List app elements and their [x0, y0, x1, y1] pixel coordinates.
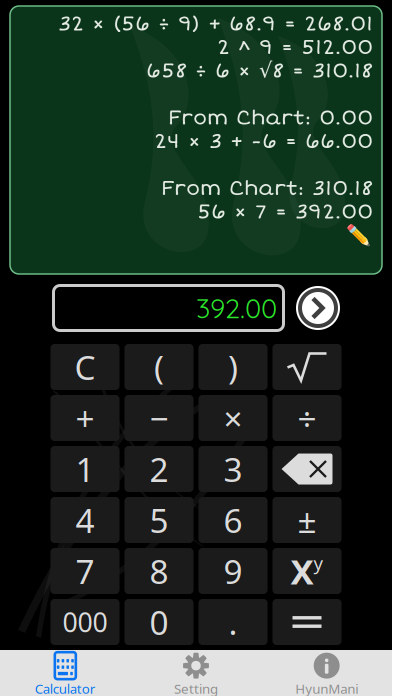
staticText: )	[228, 345, 238, 389]
staticText: +	[75, 396, 94, 440]
button[interactable]: ÷	[272, 395, 341, 441]
button[interactable]: .	[198, 599, 267, 645]
staticText: From Chart: 310.18	[161, 175, 373, 201]
staticText: 32 × (56 ÷ 9) + 68.9 = 268.01	[58, 11, 373, 37]
staticText: Setting	[174, 680, 218, 696]
staticText: ×	[223, 396, 242, 440]
button[interactable]: 7	[50, 548, 119, 594]
button[interactable]: −	[124, 395, 193, 441]
button[interactable]: Calculator	[0, 650, 131, 696]
staticText: 4	[75, 498, 94, 542]
staticText: −	[149, 396, 168, 440]
staticText: 5	[149, 498, 168, 542]
staticText: 2 ^ 9 = 512.00	[217, 34, 373, 60]
staticText: Calculator	[35, 680, 96, 696]
staticText: From Chart: 0.00	[168, 105, 373, 131]
button[interactable]: 0	[124, 599, 193, 645]
button[interactable]: 8	[124, 548, 193, 594]
button[interactable]: +	[50, 395, 119, 441]
staticText: C	[74, 345, 95, 389]
staticText: 658 ÷ 6 × √8 = 310.18	[146, 58, 373, 84]
button[interactable]: Setting	[131, 650, 261, 696]
button[interactable]: Evaluate	[296, 286, 340, 330]
staticText: 8	[149, 549, 168, 593]
button[interactable]: C	[50, 344, 119, 390]
staticText: (	[154, 345, 164, 389]
staticText: 000	[62, 604, 107, 640]
staticText: 0	[149, 600, 168, 644]
button[interactable]: Equals	[272, 599, 341, 645]
staticText: 1	[75, 447, 94, 491]
button[interactable]: 2	[124, 446, 193, 492]
button[interactable]: ×	[198, 395, 267, 441]
button[interactable]: )	[198, 344, 267, 390]
staticText: 392.00	[196, 291, 277, 325]
button[interactable]: Backspace	[272, 446, 341, 492]
button[interactable]: Square root	[272, 344, 341, 390]
staticText: HyunMani	[295, 680, 358, 696]
button[interactable]: 9	[198, 548, 267, 594]
button[interactable]: 1	[50, 446, 119, 492]
button[interactable]: 6	[198, 497, 267, 543]
button[interactable]: 3	[198, 446, 267, 492]
staticText: y	[313, 551, 323, 575]
staticText: 6	[223, 498, 242, 542]
button[interactable]: 000	[50, 599, 119, 645]
staticText: ±	[297, 498, 316, 542]
button[interactable]: HyunMani	[261, 650, 392, 696]
staticText: 9	[223, 549, 242, 593]
staticText: X	[290, 548, 313, 594]
staticText: 7	[75, 549, 94, 593]
button[interactable]: 4	[50, 497, 119, 543]
staticText: 24 × 3 + -6 = 66.00	[154, 128, 373, 154]
button[interactable]: (	[124, 344, 193, 390]
staticText: .	[228, 600, 237, 644]
staticText: 2	[149, 447, 168, 491]
button[interactable]: X to the power of y	[272, 548, 341, 594]
staticText: ÷	[297, 396, 316, 440]
staticText: 3	[223, 447, 242, 491]
staticText: 56 × 7 = 392.00	[197, 199, 373, 225]
button[interactable]: ±	[272, 497, 341, 543]
staticText: ✏️	[346, 224, 371, 247]
button[interactable]: 5	[124, 497, 193, 543]
